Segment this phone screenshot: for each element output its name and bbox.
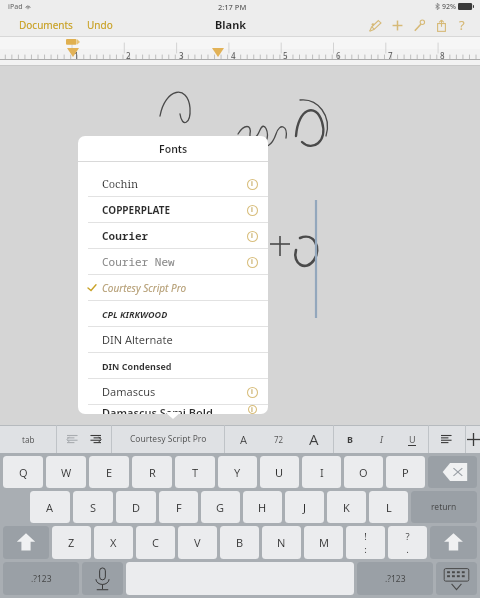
button[interactable]: Add <box>386 14 408 36</box>
button[interactable]: A <box>225 425 263 453</box>
staticText: A <box>309 429 319 449</box>
staticText: W <box>61 465 72 480</box>
button[interactable]: Help <box>452 15 472 35</box>
staticText: Courtesy Script Pro <box>130 433 207 445</box>
staticText: B <box>347 433 353 445</box>
button[interactable]: M <box>304 526 343 559</box>
button[interactable]: V <box>178 526 217 559</box>
button[interactable]: B <box>220 526 259 559</box>
staticText: Documents <box>19 18 73 32</box>
button[interactable]: Shift <box>3 526 49 559</box>
staticText: N <box>277 535 286 550</box>
button[interactable]: Info about Damascus <box>244 384 260 400</box>
button[interactable]: G <box>201 491 240 523</box>
button[interactable]: W <box>46 456 86 488</box>
button[interactable]: Settings <box>408 14 430 36</box>
button[interactable]: ! <box>346 526 385 559</box>
button[interactable]: Courtesy Script Pro <box>78 275 268 300</box>
button[interactable]: Align <box>438 430 456 448</box>
button[interactable]: N <box>262 526 301 559</box>
staticText: 5 <box>283 50 288 61</box>
staticText: . <box>406 543 409 556</box>
button[interactable]: Undo <box>86 18 114 32</box>
button[interactable]: Z <box>52 526 91 559</box>
button[interactable]: S <box>73 491 113 523</box>
button[interactable]: Backspace <box>428 456 477 488</box>
button[interactable]: Courier New <box>78 249 268 274</box>
button[interactable]: Info about Damascus Semi Bold <box>244 405 260 414</box>
button[interactable]: P <box>386 456 425 488</box>
button[interactable]: I <box>302 456 341 488</box>
button[interactable]: Cochin <box>78 171 268 196</box>
button[interactable]: U <box>260 456 299 488</box>
staticText: G <box>216 500 225 515</box>
button[interactable]: L <box>369 491 408 523</box>
button[interactable]: Documents <box>18 18 74 32</box>
button[interactable]: E <box>89 456 129 488</box>
button[interactable]: Decrease indent <box>57 425 111 453</box>
button[interactable]: T <box>175 456 215 488</box>
staticText: 6 <box>336 50 341 61</box>
button[interactable]: Hide keyboard <box>436 562 477 595</box>
button[interactable]: Damascus Semi Bold <box>78 405 268 414</box>
button[interactable]: R <box>132 456 172 488</box>
button[interactable]: Dictation <box>82 562 123 595</box>
staticText: Y <box>234 465 241 480</box>
staticText: 2:17 PM <box>218 2 247 12</box>
staticText: DIN Alternate <box>102 332 173 347</box>
button[interactable]: DIN Condensed <box>78 353 268 378</box>
button[interactable]: tab <box>0 425 56 453</box>
button[interactable]: return <box>411 491 477 523</box>
button[interactable]: A <box>295 425 333 453</box>
staticText: D <box>132 500 141 515</box>
button[interactable]: Info about Cochin <box>244 176 260 192</box>
button[interactable]: H <box>243 491 282 523</box>
staticText: i <box>251 405 253 414</box>
button[interactable]: ? <box>388 526 427 559</box>
button[interactable]: Damascus <box>78 379 268 404</box>
button[interactable]: Courier <box>78 223 268 248</box>
button[interactable]: Align <box>429 425 465 453</box>
button[interactable]: I <box>366 425 396 453</box>
button[interactable]: A <box>30 491 70 523</box>
button[interactable]: J <box>285 491 324 523</box>
staticText: K <box>343 500 350 515</box>
button[interactable]: D <box>116 491 156 523</box>
button[interactable]: DIN Alternate <box>78 327 268 352</box>
staticText: B <box>236 535 244 550</box>
button[interactable]: B <box>334 425 366 453</box>
button[interactable]: U <box>396 425 428 453</box>
button[interactable]: Share <box>430 14 452 36</box>
staticText: C <box>152 535 159 550</box>
button[interactable]: Decrease indent <box>64 430 82 448</box>
button[interactable]: Info about Courier <box>244 228 260 244</box>
button[interactable]: Info about Copperplate <box>244 202 260 218</box>
staticText: H <box>258 500 267 515</box>
button[interactable]: Brush <box>364 14 386 36</box>
staticText: Z <box>68 535 75 550</box>
button[interactable]: Y <box>218 456 257 488</box>
button[interactable]: C <box>136 526 175 559</box>
button[interactable]: Q <box>3 456 43 488</box>
button[interactable]: .?123 <box>3 562 79 595</box>
staticText: return <box>431 501 457 513</box>
staticText: iPad <box>8 2 23 12</box>
button[interactable]: X <box>94 526 133 559</box>
button[interactable]: .?123 <box>357 562 433 595</box>
staticText: X <box>110 535 117 550</box>
staticText: 3 <box>179 50 184 61</box>
staticText: I <box>380 433 383 445</box>
button[interactable]: O <box>344 456 383 488</box>
staticText: ! <box>364 530 367 543</box>
button[interactable]: 72 <box>263 425 295 453</box>
button[interactable]: More <box>466 425 480 453</box>
button[interactable]: Shift <box>430 526 477 559</box>
button[interactable]: Increase indent <box>86 430 104 448</box>
button[interactable]: CPL KIRKWOOD <box>78 301 268 326</box>
button[interactable]: F <box>159 491 198 523</box>
button[interactable]: K <box>327 491 366 523</box>
button[interactable]: Info about Courier New <box>244 254 260 270</box>
button[interactable]: Courtesy Script Pro <box>112 425 224 453</box>
button[interactable]: COPPERPLATE <box>78 197 268 222</box>
